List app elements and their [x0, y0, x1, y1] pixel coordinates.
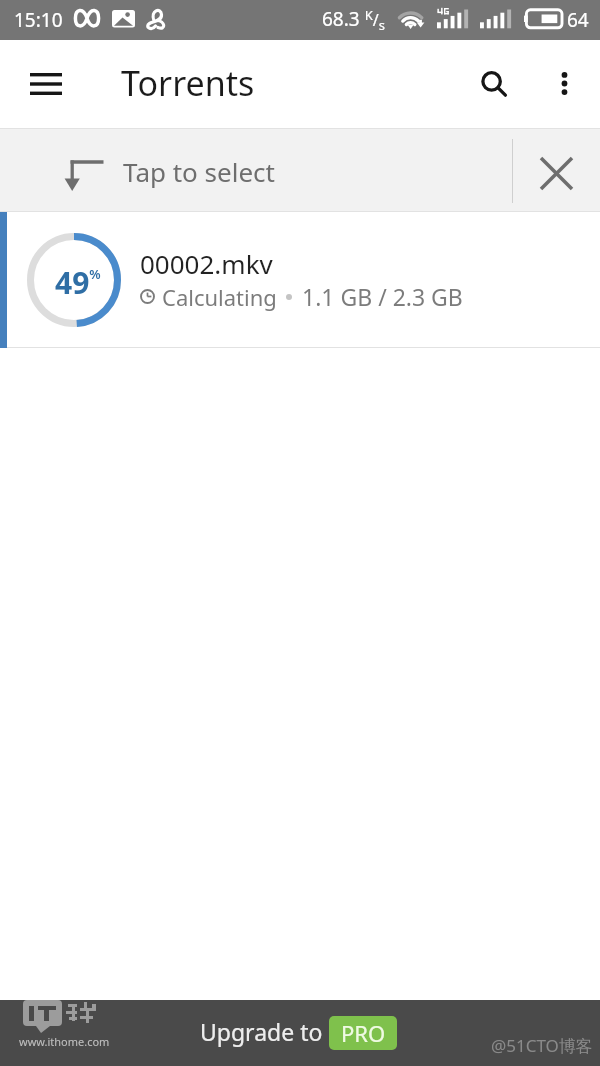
staticText: PRO	[341, 1018, 386, 1048]
staticText: 68.3 K/s	[322, 6, 385, 34]
staticText: www.ithome.com	[19, 1034, 110, 1049]
button[interactable]: Open navigation menu	[10, 61, 82, 107]
staticText: Upgrade to	[200, 1016, 323, 1047]
staticText: 00002.mkv	[140, 246, 273, 281]
button[interactable]: 49%	[0, 212, 600, 348]
staticText: 1.1 GB / 2.3 GB	[302, 281, 463, 312]
button[interactable]: More options	[532, 58, 596, 108]
staticText: Tap to select	[123, 154, 275, 189]
staticText: @51CTO博客	[491, 1034, 593, 1057]
staticText: Torrents	[121, 60, 255, 106]
staticText: 64	[567, 7, 589, 33]
button[interactable]: Search	[461, 59, 531, 111]
button[interactable]: Upgrade to	[0, 998, 598, 1064]
button[interactable]: Close selection mode	[513, 129, 600, 212]
staticText: Calculating	[162, 282, 277, 312]
button[interactable]: Tap to select	[0, 129, 512, 212]
staticText: 15:10	[14, 7, 63, 33]
staticText: 49%	[55, 262, 101, 303]
